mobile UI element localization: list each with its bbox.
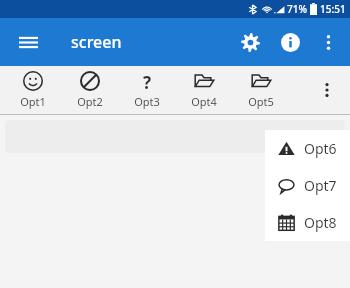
staticText: Opt1	[20, 94, 46, 109]
button[interactable]: More options	[310, 73, 344, 107]
button[interactable]	[5, 120, 345, 153]
button[interactable]: Opt1	[4, 66, 61, 114]
staticText: Opt4	[191, 94, 217, 109]
button[interactable]: Settings	[230, 22, 270, 62]
button[interactable]: Opt5	[232, 66, 289, 114]
button[interactable]: Opt6	[265, 130, 350, 167]
staticText: screen	[71, 31, 122, 53]
staticText: Opt5	[248, 94, 274, 109]
staticText: Opt2	[77, 94, 103, 109]
staticText: 15:51	[320, 2, 346, 16]
staticText: Opt7	[304, 176, 337, 195]
button[interactable]: More options	[310, 22, 346, 62]
staticText: ?	[143, 71, 152, 91]
button[interactable]: Opt2	[61, 66, 118, 114]
button[interactable]: ?	[118, 66, 175, 114]
button[interactable]: Info	[270, 22, 310, 62]
staticText: Opt3	[134, 94, 160, 109]
button[interactable]: Opt4	[175, 66, 232, 114]
staticText: Opt8	[304, 213, 337, 232]
button[interactable]: Opt7	[265, 167, 350, 204]
button[interactable]: Navigation menu	[8, 22, 48, 62]
button[interactable]: Opt8	[265, 204, 350, 241]
staticText: Opt6	[304, 139, 337, 158]
staticText: 71%	[287, 2, 307, 16]
